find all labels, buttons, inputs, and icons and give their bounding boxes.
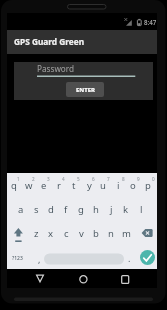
staticText: i bbox=[117, 179, 120, 192]
button[interactable] bbox=[44, 246, 124, 269]
button[interactable] bbox=[104, 222, 119, 246]
staticText: x bbox=[48, 227, 54, 240]
staticText: . bbox=[128, 252, 131, 264]
staticText: h bbox=[93, 203, 99, 216]
button[interactable] bbox=[74, 198, 89, 222]
button[interactable] bbox=[37, 174, 52, 198]
staticText: s bbox=[34, 203, 39, 216]
button[interactable] bbox=[59, 222, 74, 246]
staticText: GPS Guard Green bbox=[14, 36, 85, 47]
button[interactable] bbox=[52, 174, 67, 198]
staticText: q bbox=[11, 179, 17, 192]
button[interactable] bbox=[122, 246, 136, 269]
button[interactable] bbox=[134, 222, 157, 246]
button[interactable] bbox=[140, 250, 155, 265]
button[interactable] bbox=[7, 174, 22, 198]
staticText: d bbox=[48, 203, 54, 216]
button[interactable] bbox=[44, 198, 59, 222]
staticText: j bbox=[110, 203, 113, 216]
staticText: a bbox=[18, 203, 24, 216]
staticText: 1 bbox=[17, 176, 20, 182]
staticText: 7 bbox=[107, 176, 110, 182]
button[interactable] bbox=[74, 222, 89, 246]
staticText: n bbox=[108, 227, 114, 240]
button[interactable] bbox=[29, 198, 44, 222]
button[interactable] bbox=[67, 174, 82, 198]
staticText: b bbox=[93, 227, 99, 240]
button[interactable] bbox=[127, 174, 142, 198]
button[interactable] bbox=[7, 246, 29, 269]
staticText: z bbox=[34, 227, 39, 240]
button[interactable] bbox=[142, 174, 157, 198]
button[interactable]: ENTER bbox=[66, 82, 104, 97]
button[interactable] bbox=[70, 269, 98, 288]
button[interactable] bbox=[112, 269, 140, 288]
staticText: v bbox=[79, 227, 84, 240]
staticText: w bbox=[25, 179, 33, 192]
staticText: r bbox=[57, 179, 61, 192]
staticText: k bbox=[123, 203, 129, 216]
button[interactable] bbox=[104, 198, 119, 222]
staticText: g bbox=[78, 203, 84, 216]
button[interactable] bbox=[89, 198, 104, 222]
staticText: t bbox=[72, 179, 76, 192]
staticText: 2 bbox=[32, 176, 35, 182]
staticText: f bbox=[64, 203, 68, 216]
staticText: 8 bbox=[122, 176, 125, 182]
staticText: 5 bbox=[77, 176, 80, 182]
button[interactable] bbox=[44, 222, 59, 246]
staticText: Password bbox=[37, 63, 75, 74]
staticText: p bbox=[145, 179, 151, 192]
staticText: c bbox=[64, 227, 69, 240]
staticText: , bbox=[38, 253, 41, 265]
staticText: 9 bbox=[137, 176, 140, 182]
staticText: y bbox=[87, 179, 92, 192]
staticText: e bbox=[41, 179, 47, 192]
button[interactable] bbox=[89, 222, 104, 246]
button[interactable] bbox=[30, 246, 44, 269]
button[interactable] bbox=[134, 198, 149, 222]
button[interactable] bbox=[82, 174, 97, 198]
staticText: o bbox=[130, 179, 136, 192]
button[interactable] bbox=[119, 222, 134, 246]
button[interactable] bbox=[7, 222, 29, 246]
button[interactable] bbox=[14, 198, 29, 222]
staticText: m bbox=[122, 227, 131, 240]
staticText: l bbox=[140, 203, 143, 216]
button[interactable] bbox=[119, 198, 134, 222]
button[interactable]: Password bbox=[37, 60, 136, 77]
button[interactable] bbox=[27, 269, 55, 288]
staticText: ?123 bbox=[12, 255, 23, 262]
button[interactable] bbox=[59, 198, 74, 222]
staticText: 0 bbox=[152, 176, 155, 182]
staticText: 6 bbox=[92, 176, 95, 182]
staticText: 3 bbox=[47, 176, 50, 182]
staticText: u bbox=[100, 179, 106, 192]
staticText: ENTER bbox=[76, 86, 95, 94]
staticText: 8:47 bbox=[144, 18, 157, 26]
staticText: 4 bbox=[62, 176, 65, 182]
button[interactable] bbox=[112, 174, 127, 198]
button[interactable] bbox=[97, 174, 112, 198]
button[interactable] bbox=[29, 222, 44, 246]
button[interactable] bbox=[22, 174, 37, 198]
